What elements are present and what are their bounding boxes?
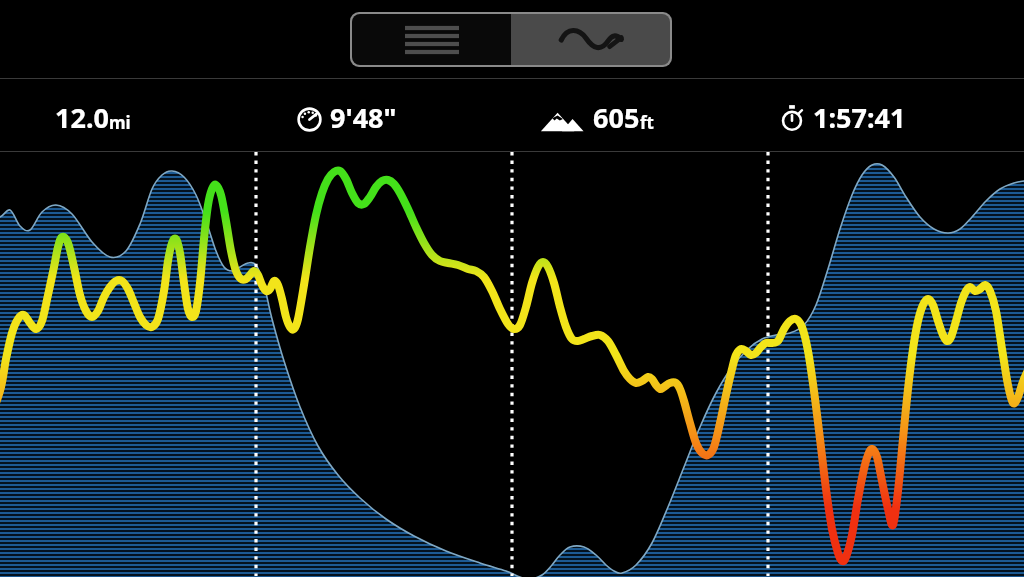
button[interactable]: Pace	[297, 99, 397, 136]
other: Elevation gain	[540, 106, 584, 134]
staticText: 1:57:41	[813, 99, 906, 136]
other: Duration	[780, 104, 804, 132]
button[interactable]: List view	[352, 14, 511, 65]
button[interactable]: Elevation gain	[540, 99, 654, 136]
button[interactable]: Duration	[780, 99, 906, 136]
staticText: 605	[593, 99, 640, 136]
staticText: 12.0	[55, 99, 109, 136]
button[interactable]: Elevation and pace graph	[0, 152, 1024, 576]
staticText: 9'48"	[330, 99, 397, 136]
other: Pace	[297, 107, 322, 132]
staticText: mi	[109, 111, 131, 134]
button[interactable]: Graph view	[511, 14, 670, 65]
button[interactable]: 12.0	[55, 99, 131, 136]
staticText: ft	[640, 111, 654, 134]
